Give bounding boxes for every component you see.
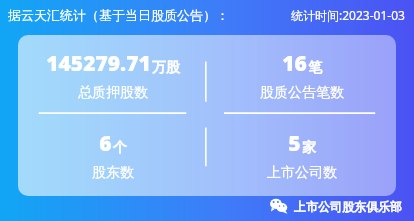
button[interactable]: 145279.71 <box>18 35 207 115</box>
staticText: 笔 <box>308 59 322 77</box>
staticText: 统计时间:2023-01-03 <box>291 7 405 23</box>
staticText: 股东数 <box>92 164 134 182</box>
button[interactable]: 16 <box>207 35 396 115</box>
staticText: 上市公司数 <box>267 164 337 182</box>
button[interactable]: 6 <box>18 115 207 196</box>
staticText: 总质押股数 <box>78 84 148 102</box>
staticText: 家 <box>302 139 316 157</box>
staticText: 据云天汇统计（基于当日股质公告）： <box>8 7 229 23</box>
staticText: 个 <box>113 139 127 157</box>
button[interactable]: WeChat <box>268 195 404 217</box>
staticText: 6 <box>99 129 112 158</box>
staticText: 股质公告笔数 <box>260 84 344 102</box>
staticText: 5 <box>288 129 301 158</box>
staticText: 16 <box>282 49 307 78</box>
button[interactable]: 5 <box>207 115 396 196</box>
staticText: 145279.71 <box>46 49 151 78</box>
other: WeChat <box>270 197 288 215</box>
staticText: 万股 <box>152 59 180 77</box>
staticText: 上市公司股东俱乐部 <box>294 199 402 214</box>
